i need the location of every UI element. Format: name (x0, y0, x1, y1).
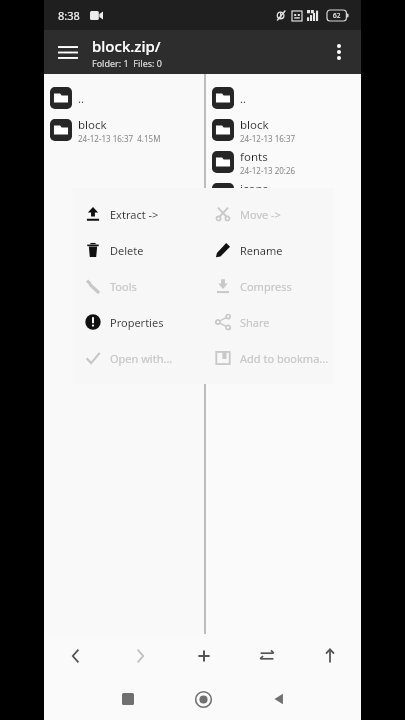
button[interactable]: Back (44, 634, 108, 678)
button[interactable]: Up (298, 634, 361, 678)
button[interactable]: Share (203, 304, 333, 340)
staticText: 8:38 (58, 8, 80, 23)
button[interactable]: Open with... (73, 340, 203, 376)
staticText: Move -> (240, 207, 281, 222)
staticText: fonts (240, 149, 268, 165)
staticText: Share (240, 315, 270, 330)
button[interactable]: Back (241, 678, 316, 720)
staticText: Add to bookma... (240, 351, 329, 366)
button[interactable]: .. (44, 82, 204, 114)
button[interactable]: Home (166, 678, 241, 720)
staticText: Rename (240, 243, 283, 258)
staticText: Tools (110, 279, 137, 294)
button[interactable]: fonts (206, 146, 361, 178)
staticText: 24-12-13 20:26 (240, 165, 296, 176)
button[interactable]: Add (172, 634, 235, 678)
button[interactable]: Compress (203, 268, 333, 304)
staticText: .. (240, 91, 246, 106)
staticText: icons (240, 181, 269, 197)
button[interactable]: Tools (73, 268, 203, 304)
staticText: block (240, 117, 269, 133)
button[interactable]: images (206, 210, 361, 242)
button[interactable]: sounds (206, 242, 361, 274)
button[interactable]: icons (206, 178, 361, 210)
button[interactable]: Forward (108, 634, 172, 678)
button[interactable]: Extract -> (73, 196, 203, 232)
button[interactable]: Move -> (203, 196, 333, 232)
button[interactable]: block (206, 114, 361, 146)
staticText: block.zip/ (92, 36, 161, 56)
staticText: Compress (240, 279, 292, 294)
staticText: 24-12-13 16:37 4.15M (78, 133, 161, 144)
staticText: 24-12-13 16:37 (240, 133, 296, 144)
button[interactable]: .. (206, 82, 361, 114)
button[interactable]: Add to bookma... (203, 340, 333, 376)
staticText: Properties (110, 315, 164, 330)
staticText: 62 (333, 11, 341, 20)
staticText: sounds (240, 245, 280, 261)
staticText: Open with... (110, 351, 173, 366)
staticText: Delete (110, 243, 144, 258)
staticText: images (240, 213, 280, 229)
staticText: block (78, 117, 107, 133)
button[interactable]: Properties (73, 304, 203, 340)
staticText: Folder: 1 Files: 0 (92, 57, 162, 69)
button[interactable]: Delete (73, 232, 203, 268)
button[interactable]: Recents (90, 678, 166, 720)
button[interactable]: Menu (52, 36, 84, 68)
button[interactable]: More options (323, 36, 355, 68)
button[interactable]: Swap (235, 634, 298, 678)
staticText: .. (78, 91, 84, 106)
staticText: Extract -> (110, 207, 159, 222)
button[interactable]: Rename (203, 232, 333, 268)
button[interactable]: block (44, 114, 204, 146)
